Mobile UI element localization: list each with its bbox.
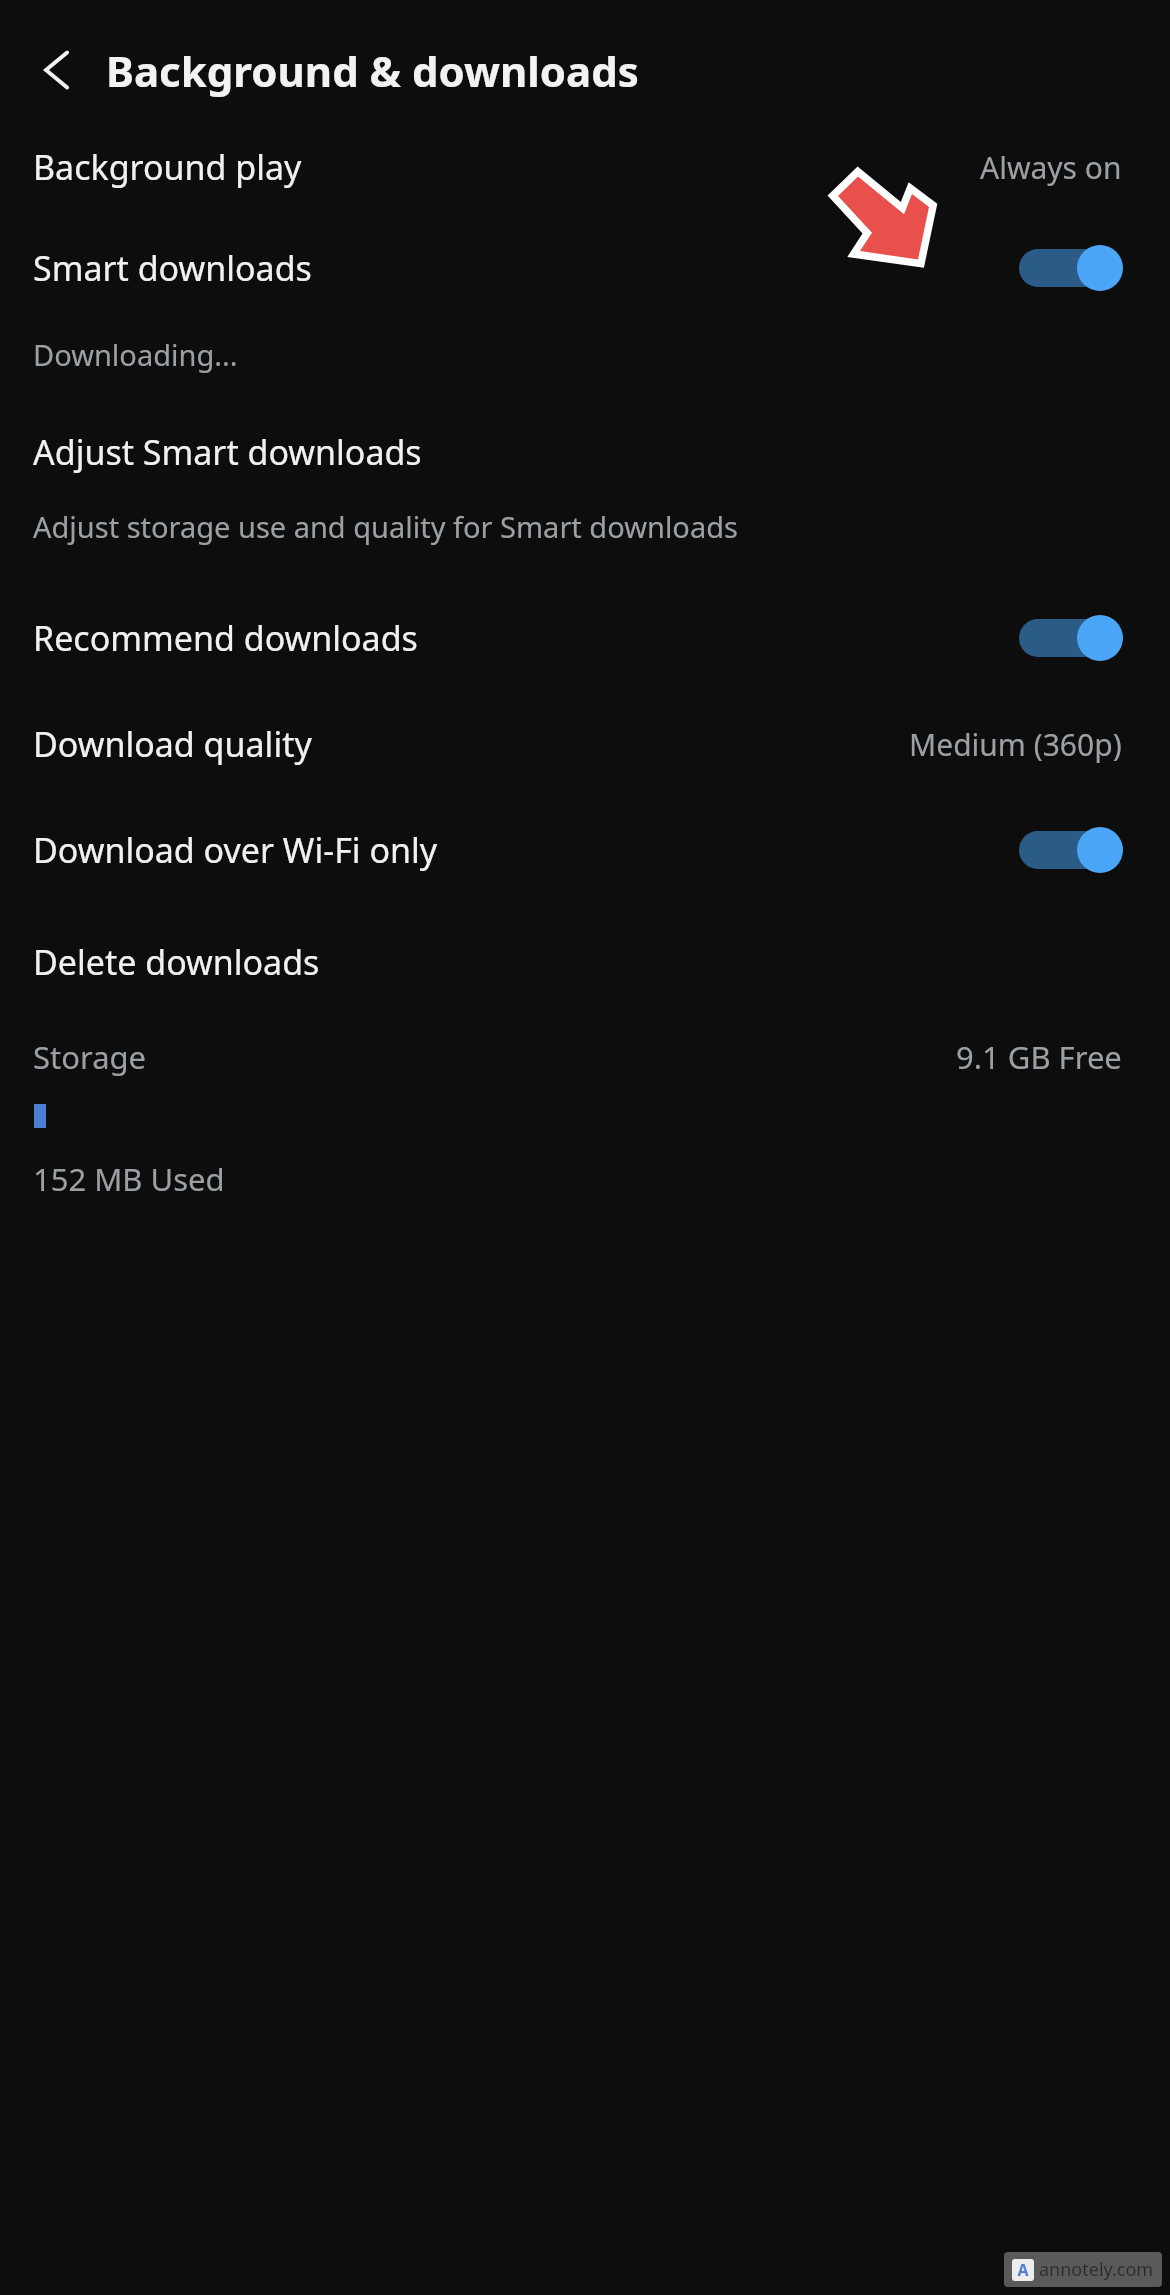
staticText: Storage bbox=[33, 1036, 147, 1078]
button[interactable]: Delete downloads bbox=[0, 912, 1170, 1012]
button[interactable]: Download quality bbox=[0, 694, 1170, 794]
button[interactable]: Back bbox=[12, 25, 102, 115]
button[interactable]: Toggle bbox=[1019, 242, 1125, 294]
staticText: Adjust Smart downloads bbox=[33, 429, 422, 475]
button[interactable]: Recommend downloads bbox=[0, 588, 1170, 688]
button[interactable]: Download over Wi-Fi only bbox=[0, 800, 1170, 900]
button[interactable]: Background play bbox=[0, 116, 1170, 218]
staticText: Delete downloads bbox=[33, 939, 320, 985]
button[interactable]: Adjust Smart downloads bbox=[0, 416, 1170, 564]
staticText: Adjust storage use and quality for Smart… bbox=[33, 507, 738, 546]
staticText: Smart downloads bbox=[33, 245, 312, 291]
button[interactable]: Toggle bbox=[1019, 824, 1125, 876]
staticText: Background play bbox=[33, 144, 302, 190]
staticText: Downloading... bbox=[33, 335, 238, 374]
staticText: A bbox=[1017, 2259, 1029, 2281]
staticText: annotely.com bbox=[1039, 2257, 1154, 2282]
staticText: 9.1 GB Free bbox=[956, 1036, 1122, 1078]
staticText: 152 MB Used bbox=[33, 1158, 225, 1200]
staticText: Medium (360p) bbox=[909, 724, 1122, 765]
staticText: Always on bbox=[980, 147, 1122, 188]
staticText: Background & downloads bbox=[106, 42, 639, 99]
staticText: Download quality bbox=[33, 721, 312, 767]
staticText: Recommend downloads bbox=[33, 615, 418, 661]
staticText: Download over Wi-Fi only bbox=[33, 827, 438, 873]
button[interactable]: Toggle bbox=[1019, 612, 1125, 664]
button[interactable]: Smart downloads bbox=[0, 218, 1170, 318]
